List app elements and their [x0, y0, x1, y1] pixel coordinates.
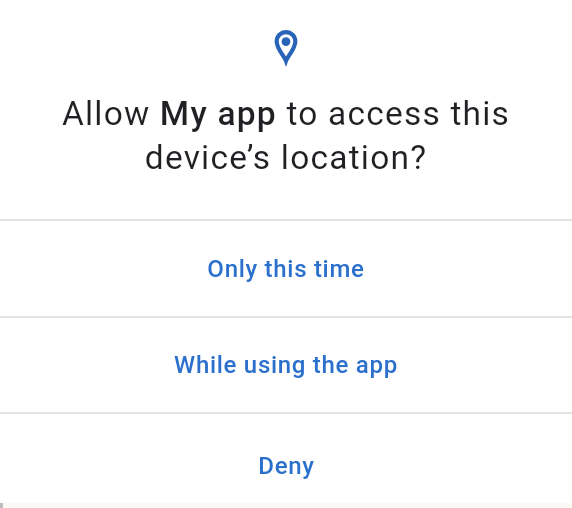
- staticText: Allow My app to access this device’s loc…: [0, 94, 572, 177]
- staticText: Only this time: [207, 255, 365, 283]
- button[interactable]: Deny: [0, 414, 572, 508]
- staticText: While using the app: [174, 351, 398, 379]
- staticText: Deny: [258, 452, 315, 480]
- button[interactable]: While using the app: [0, 318, 572, 412]
- button[interactable]: Only this time: [0, 221, 572, 316]
